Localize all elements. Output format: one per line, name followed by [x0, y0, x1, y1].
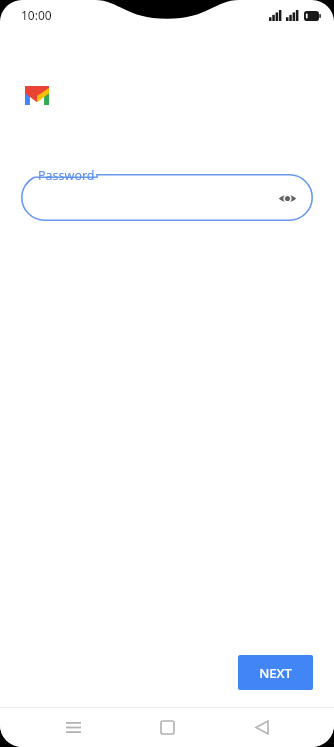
staticText: Password [38, 167, 95, 184]
button[interactable]: Show password [21, 165, 313, 221]
button[interactable]: NEXT [238, 655, 313, 690]
button[interactable]: Show password [273, 184, 301, 212]
button[interactable]: Home [145, 708, 189, 747]
staticText: NEXT [259, 664, 292, 682]
button[interactable]: Back [240, 708, 284, 747]
staticText: 10:00 [21, 7, 52, 23]
button[interactable]: Recent apps [51, 708, 95, 747]
